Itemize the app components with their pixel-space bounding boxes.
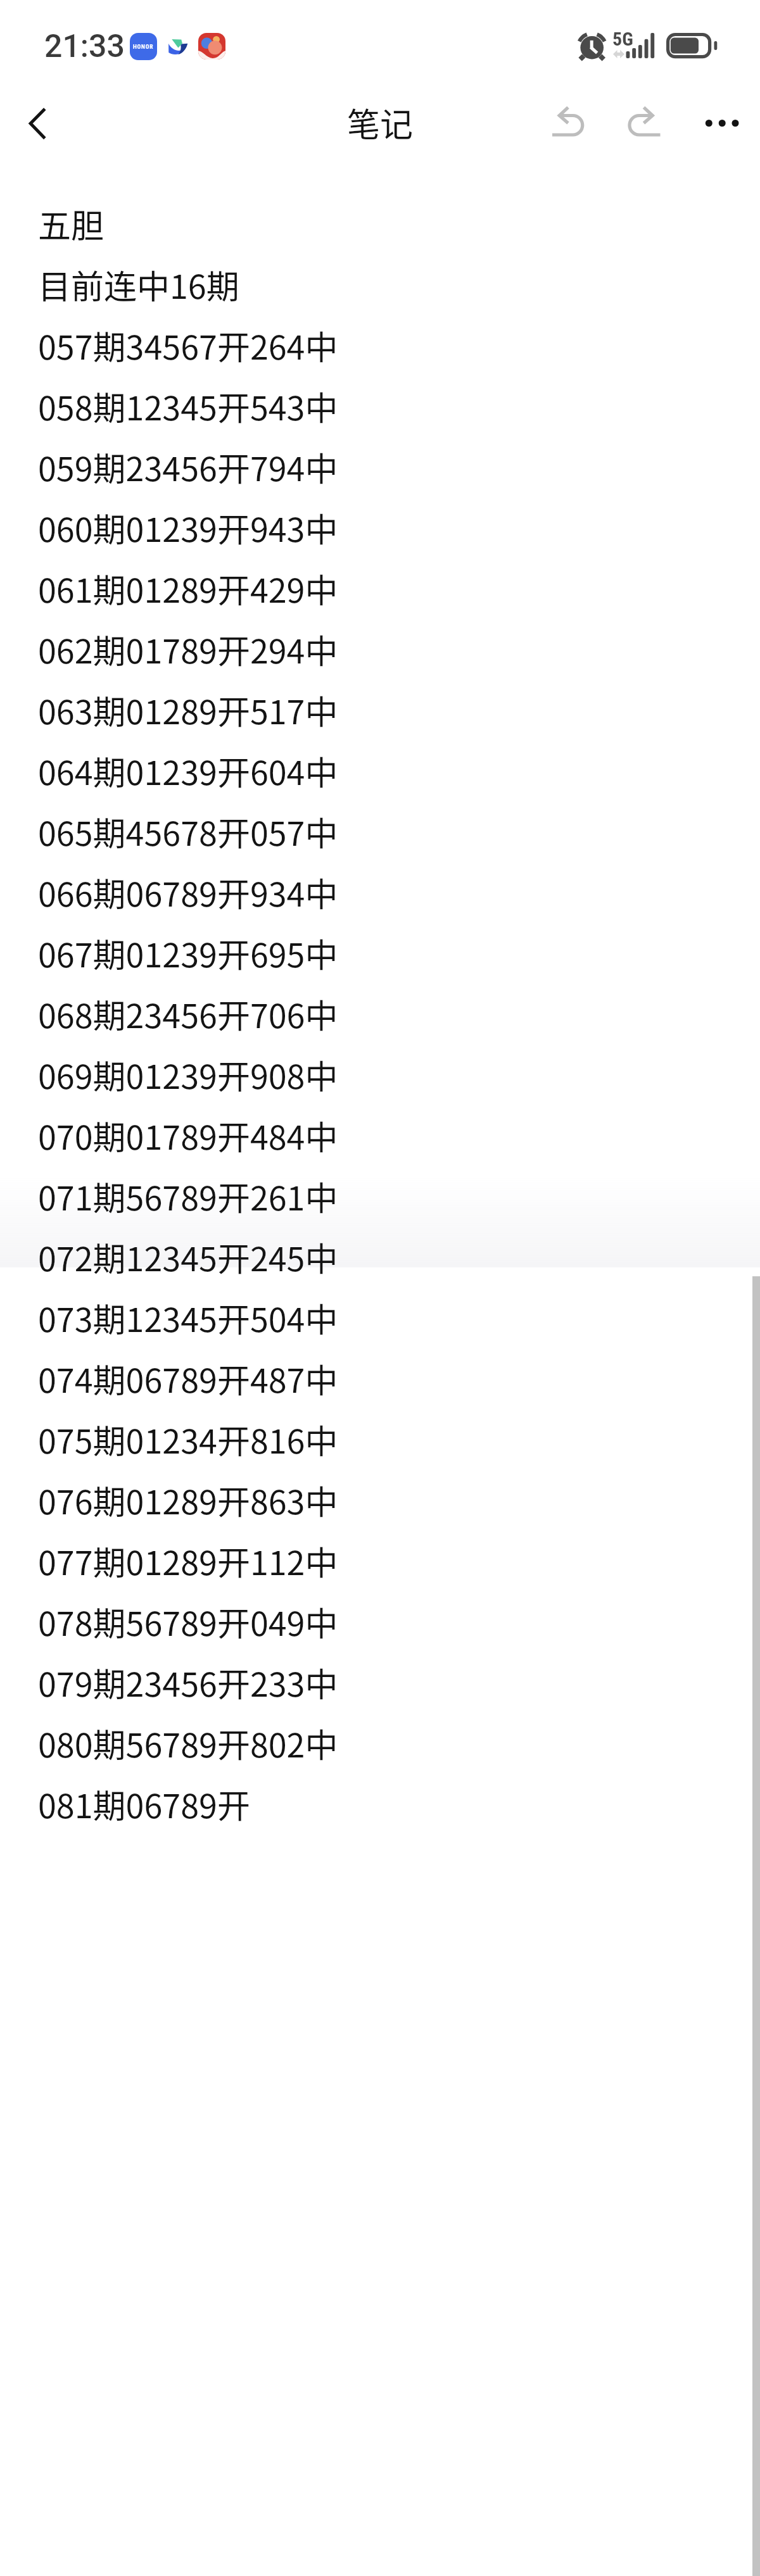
staticText: 目前连中16期 xyxy=(38,261,239,308)
staticText: 060期01239开943中 xyxy=(38,504,338,551)
staticText: 080期56789开802中 xyxy=(38,1719,338,1767)
staticText: 五胆 xyxy=(38,200,104,248)
button[interactable]: Undo xyxy=(540,96,596,151)
staticText: 062期01789开294中 xyxy=(38,625,338,673)
staticText: 064期01239开604中 xyxy=(38,747,338,795)
staticText: 073期12345开504中 xyxy=(38,1294,338,1341)
staticText: 057期34567开264中 xyxy=(38,322,338,369)
staticText: 077期01289开112中 xyxy=(38,1537,338,1585)
staticText: 063期01289开517中 xyxy=(38,686,338,734)
staticText: 074期06789开487中 xyxy=(38,1355,338,1402)
staticText: 066期06789开934中 xyxy=(38,869,338,916)
staticText: 079期23456开233中 xyxy=(38,1659,338,1706)
staticText: 067期01239开695中 xyxy=(38,929,338,977)
staticText: 笔记 xyxy=(0,99,760,146)
button[interactable]: More options xyxy=(694,96,750,151)
staticText: 065期45678开057中 xyxy=(38,808,338,855)
staticText: HONOR xyxy=(133,43,154,50)
staticText: 072期12345开245中 xyxy=(38,1233,338,1281)
button[interactable]: Back xyxy=(9,96,65,151)
staticText: 058期12345开543中 xyxy=(38,382,338,430)
staticText: 21:33 xyxy=(44,28,125,65)
staticText: 070期01789开484中 xyxy=(38,1112,338,1159)
staticText: 069期01239开908中 xyxy=(38,1051,338,1098)
staticText: 059期23456开794中 xyxy=(38,443,338,491)
staticText: 075期01234开816中 xyxy=(38,1416,338,1463)
staticText: 071期56789开261中 xyxy=(38,1172,338,1220)
staticText: 068期23456开706中 xyxy=(38,990,338,1038)
staticText: 076期01289开863中 xyxy=(38,1476,338,1524)
staticText: 5G xyxy=(612,28,633,50)
staticText: 081期06789开 xyxy=(38,1780,250,1828)
staticText: 078期56789开049中 xyxy=(38,1598,338,1645)
staticText: 061期01289开429中 xyxy=(38,565,338,612)
button[interactable]: Redo xyxy=(610,96,666,151)
